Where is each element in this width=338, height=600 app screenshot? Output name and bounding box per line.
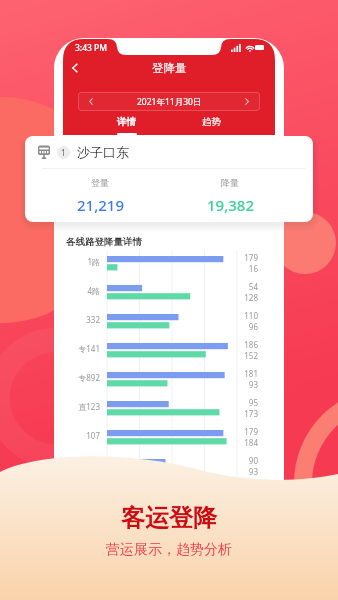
staticText: 93 bbox=[248, 466, 258, 477]
staticText: 332 bbox=[66, 314, 100, 325]
staticText: 4路 bbox=[66, 285, 100, 296]
staticText: 107 bbox=[66, 430, 100, 441]
staticText: 专892 bbox=[66, 372, 100, 383]
staticText: 184 bbox=[244, 437, 258, 448]
staticText: 181 bbox=[244, 368, 258, 379]
staticText: 登量 bbox=[91, 177, 109, 188]
staticText: 128 bbox=[244, 292, 258, 303]
staticText: 直123 bbox=[66, 401, 100, 412]
staticText: 趋势 bbox=[202, 116, 221, 128]
staticText: 19,382 bbox=[207, 195, 254, 215]
staticText: 3:43 PM bbox=[75, 42, 108, 54]
staticText: 1 bbox=[61, 147, 66, 158]
staticText: 95 bbox=[248, 397, 258, 408]
staticText: 54 bbox=[248, 281, 258, 292]
staticText: 营运展示，趋势分析 bbox=[106, 541, 232, 559]
staticText: 179 bbox=[244, 426, 258, 437]
staticText: 179 bbox=[244, 252, 258, 263]
button[interactable]: 趋势 bbox=[169, 116, 254, 135]
staticText: 96 bbox=[248, 321, 258, 332]
staticText: 登降量 bbox=[152, 61, 187, 75]
staticText: 186 bbox=[244, 339, 258, 350]
staticText: 1路 bbox=[66, 256, 100, 267]
staticText: 沙子口东 bbox=[77, 144, 129, 160]
staticText: 16 bbox=[248, 263, 258, 274]
staticText: 110 bbox=[244, 310, 258, 321]
button[interactable]: 2021年11月30日 bbox=[78, 92, 260, 111]
button[interactable]: 1 bbox=[25, 136, 313, 222]
staticText: 降量 bbox=[221, 177, 239, 188]
staticText: 93 bbox=[248, 379, 258, 390]
staticText: 客运登降 bbox=[121, 503, 217, 533]
staticText: 90 bbox=[248, 455, 258, 466]
staticText: 详情 bbox=[117, 116, 136, 128]
button[interactable]: Back bbox=[63, 57, 87, 79]
staticText: 各线路登降量详情 bbox=[66, 236, 142, 248]
staticText: 21,219 bbox=[77, 195, 124, 215]
staticText: 173 bbox=[244, 408, 258, 419]
staticText: 152 bbox=[244, 350, 258, 361]
button[interactable]: 详情 bbox=[84, 116, 169, 135]
staticText: 专141 bbox=[66, 343, 100, 354]
staticText: 2021年11月30日 bbox=[137, 96, 202, 108]
